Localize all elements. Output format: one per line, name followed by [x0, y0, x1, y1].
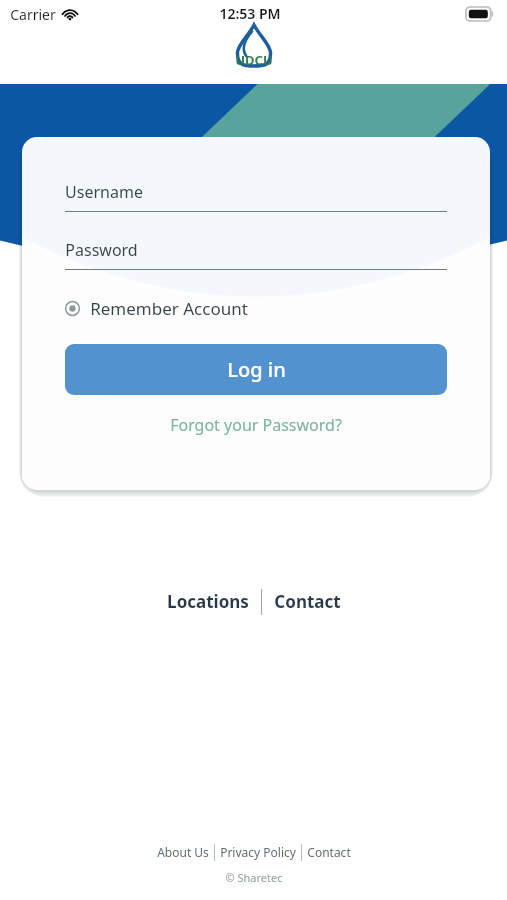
button[interactable]: Forgot your Password? — [164, 411, 348, 439]
staticText: Contact — [307, 844, 351, 860]
staticText: © Sharetec — [225, 870, 283, 885]
staticText: Contact — [274, 590, 341, 613]
staticText: Password — [65, 239, 138, 261]
button[interactable]: Contact — [268, 586, 347, 617]
staticText: Log in — [227, 356, 286, 383]
button[interactable]: Remember Account — [65, 295, 248, 322]
staticText: 12:53 PM — [219, 4, 281, 23]
staticText: Locations — [167, 590, 249, 613]
button[interactable]: Contact — [302, 842, 356, 862]
staticText: Username — [65, 181, 143, 203]
button[interactable]: Password — [65, 239, 447, 270]
staticText: Forgot your Password? — [170, 414, 342, 436]
button[interactable]: Username — [65, 181, 447, 212]
staticText: Privacy Policy — [220, 844, 296, 860]
button[interactable]: Privacy Policy — [215, 842, 301, 862]
staticText: About Us — [157, 844, 209, 860]
staticText: UDCU — [235, 51, 273, 69]
staticText: Carrier — [10, 5, 56, 24]
button[interactable]: Locations — [161, 586, 255, 617]
button[interactable]: About Us — [152, 842, 214, 862]
button[interactable]: Log in — [65, 344, 447, 395]
staticText: Remember Account — [90, 297, 248, 320]
